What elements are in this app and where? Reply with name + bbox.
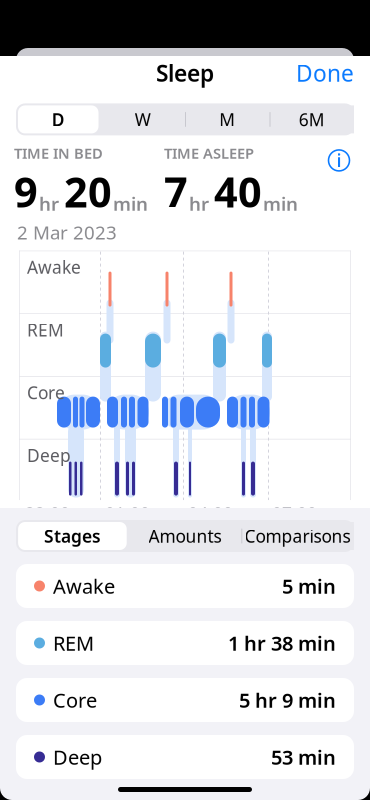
staticText: hr xyxy=(189,191,209,216)
button[interactable]: REM xyxy=(16,621,354,665)
button[interactable]: Done xyxy=(280,48,370,98)
staticText: 5 min xyxy=(282,573,336,599)
staticText: 07:00 xyxy=(272,502,317,525)
staticText: TIME IN BED xyxy=(14,143,103,163)
staticText: 22:00 xyxy=(25,502,70,525)
staticText: 40 xyxy=(214,164,262,219)
staticText: i xyxy=(336,149,341,172)
staticText: hr xyxy=(39,191,59,216)
staticText: Comparisons xyxy=(245,524,351,547)
staticText: Stages xyxy=(44,524,101,547)
staticText: Deep xyxy=(27,444,71,467)
button[interactable]: 6M xyxy=(269,103,354,135)
staticText: 6M xyxy=(299,108,325,131)
staticText: 20 xyxy=(64,164,112,219)
staticText: TIME ASLEEP xyxy=(164,143,254,163)
staticText: 2 Mar 2023 xyxy=(17,220,117,245)
button[interactable]: Comparisons xyxy=(241,520,354,552)
staticText: W xyxy=(135,108,151,131)
button[interactable]: Core xyxy=(16,678,354,722)
button[interactable]: More information about sleep xyxy=(322,143,356,177)
staticText: 7 xyxy=(164,164,188,219)
staticText: REM xyxy=(53,630,94,656)
staticText: Deep xyxy=(53,744,102,770)
staticText: Core xyxy=(27,381,65,404)
button[interactable]: D xyxy=(16,103,100,135)
staticText: Done xyxy=(296,58,354,88)
button[interactable]: M xyxy=(185,103,269,135)
staticText: Sleep xyxy=(156,58,214,88)
staticText: 01:00 xyxy=(105,502,150,525)
staticText: Awake xyxy=(53,573,115,599)
button[interactable]: W xyxy=(100,103,185,135)
staticText: 9 xyxy=(14,164,38,219)
staticText: M xyxy=(219,108,235,131)
staticText: 04:00 xyxy=(188,502,233,525)
staticText: 5 hr 9 min xyxy=(239,687,336,713)
staticText: min xyxy=(113,191,148,216)
staticText: D xyxy=(52,108,65,131)
button[interactable]: Awake xyxy=(16,564,354,608)
staticText: Awake xyxy=(27,256,81,279)
button[interactable]: Amounts xyxy=(129,520,241,552)
staticText: REM xyxy=(27,318,64,341)
button[interactable]: Deep xyxy=(16,735,354,779)
staticText: 1 hr 38 min xyxy=(228,630,336,656)
staticText: min xyxy=(263,191,298,216)
staticText: Amounts xyxy=(148,524,221,547)
button[interactable]: Stages xyxy=(16,520,129,552)
staticText: Core xyxy=(53,687,97,713)
staticText: 53 min xyxy=(271,744,336,770)
